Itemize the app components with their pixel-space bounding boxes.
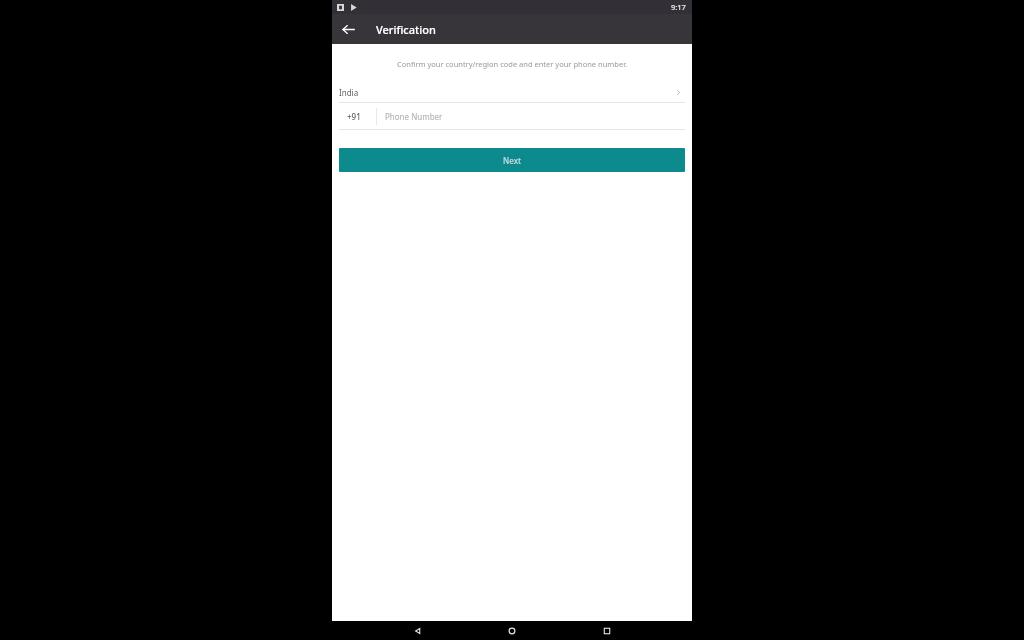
button[interactable]: Next <box>339 148 685 172</box>
staticText: Next <box>503 155 522 166</box>
button[interactable]: India <box>332 82 692 102</box>
staticText: +91 <box>347 111 361 122</box>
button[interactable]: Back <box>409 622 427 640</box>
staticText: Verification <box>376 22 436 37</box>
staticText: Phone Number <box>385 111 443 122</box>
button[interactable]: Recent apps <box>598 622 616 640</box>
staticText: 9:17 <box>671 2 686 12</box>
button[interactable]: Back <box>336 17 360 41</box>
button[interactable]: +91 <box>332 103 692 129</box>
staticText: Confirm your country/region code and ent… <box>348 59 676 69</box>
button[interactable]: Home <box>503 622 521 640</box>
staticText: India <box>339 87 359 98</box>
